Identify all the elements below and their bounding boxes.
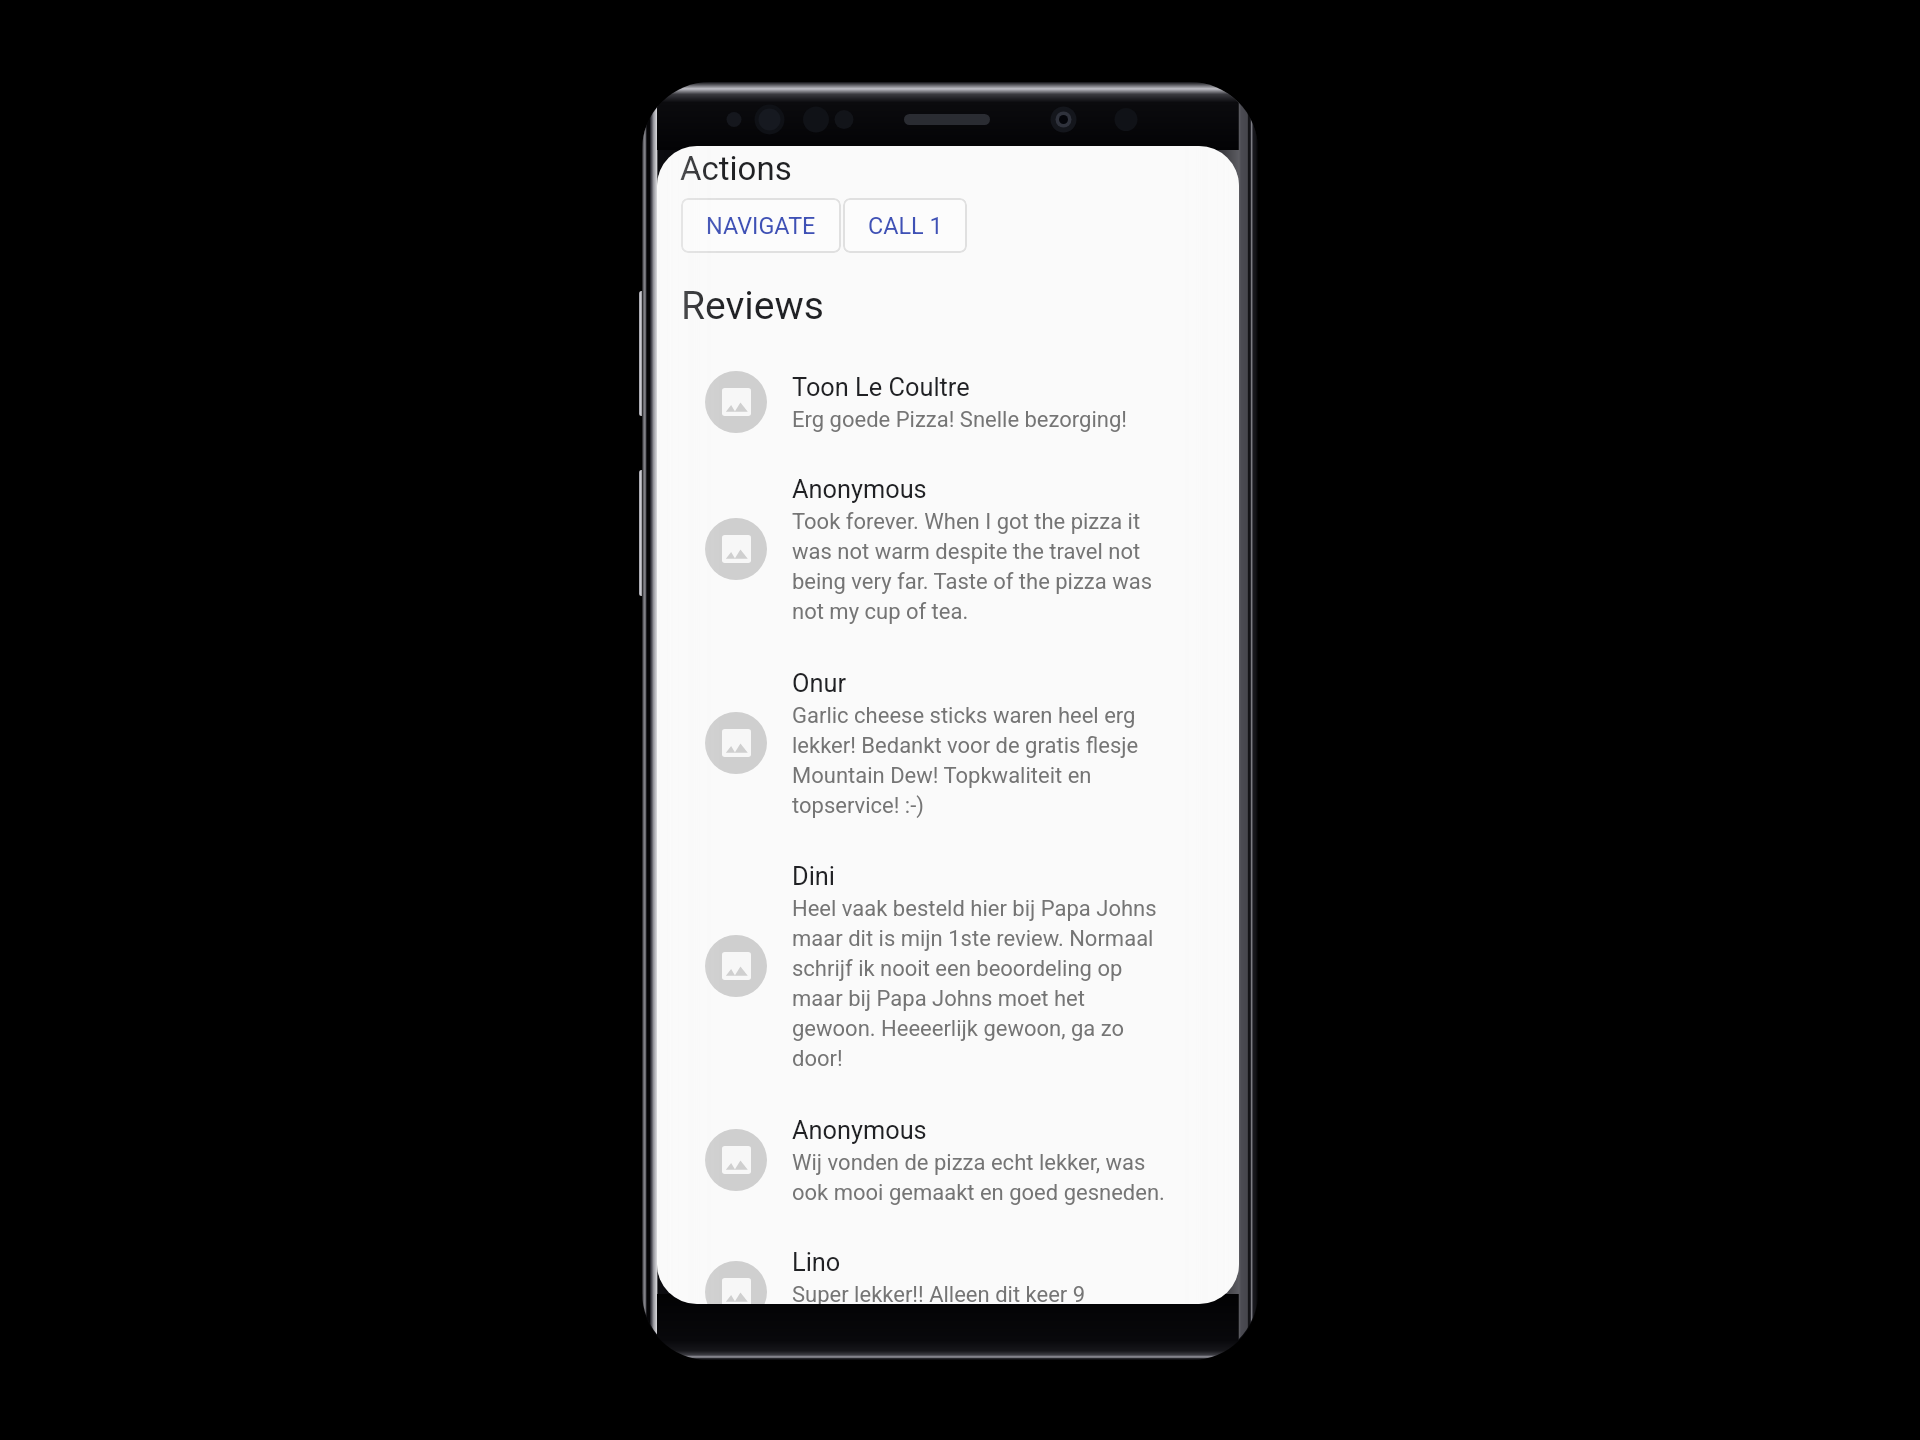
staticText: Actions [680,150,792,188]
staticText: CALL 1 [868,212,943,239]
other: Reviewer photo [705,1129,767,1191]
staticText: Lino [792,1246,841,1278]
staticText: Garlic cheese sticks waren heel erg lekk… [792,699,1166,819]
staticText: Onur [792,667,846,699]
staticText: Reviews [681,284,824,328]
other: Reviewer photo [705,1261,767,1304]
staticText: Dini [792,860,835,892]
staticText: Anonymous [792,1114,927,1146]
staticText: Toon Le Coultre [792,371,970,403]
button[interactable]: Reviewer photo [657,350,1239,453]
button[interactable]: CALL 1 [843,198,967,253]
staticText: NAVIGATE [706,212,816,239]
button[interactable]: Reviewer photo [657,645,1239,839]
other: Reviewer photo [705,371,767,433]
button[interactable]: Reviewer photo [657,1226,1239,1304]
staticText: Super lekker!! Alleen dit keer 9 bestell… [792,1278,1166,1304]
other: Reviewer photo [705,935,767,997]
button[interactable]: Reviewer photo [657,1092,1239,1226]
staticText: Wij vonden de pizza echt lekker, was ook… [792,1146,1166,1206]
button[interactable]: Reviewer photo [657,839,1239,1092]
button[interactable]: NAVIGATE [681,198,841,253]
other: Reviewer photo [705,518,767,580]
staticText: Took forever. When I got the pizza it wa… [792,505,1166,625]
staticText: Heel vaak besteld hier bij Papa Johns ma… [792,892,1166,1072]
button[interactable]: Reviewer photo [657,453,1239,645]
staticText: Erg goede Pizza! Snelle bezorging! [792,403,1127,433]
staticText: Anonymous [792,473,927,505]
other: Reviewer photo [705,712,767,774]
